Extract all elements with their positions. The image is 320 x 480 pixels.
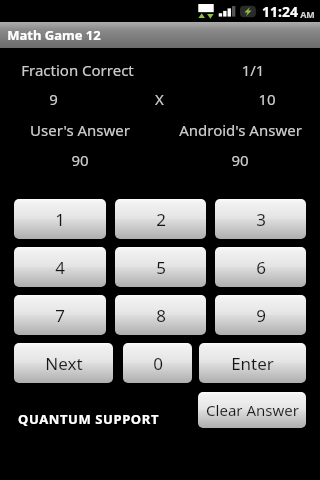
- button[interactable]: 7: [14, 295, 106, 335]
- staticText: Next: [45, 352, 83, 375]
- staticText: 0: [153, 352, 163, 375]
- button[interactable]: 2: [115, 199, 206, 239]
- staticText: Math Game 12: [7, 26, 101, 44]
- staticText: Enter: [231, 352, 274, 375]
- staticText: 11:24: [262, 2, 298, 21]
- staticText: 7: [55, 304, 65, 327]
- staticText: 3: [256, 208, 266, 231]
- staticText: 8: [156, 304, 166, 327]
- staticText: 6: [256, 256, 266, 279]
- staticText: 4: [55, 256, 65, 279]
- staticText: 10: [258, 89, 276, 109]
- staticText: X: [155, 89, 164, 109]
- other: Signal strength: [218, 3, 236, 20]
- other: 3G data connection: [197, 3, 215, 20]
- staticText: User's Answer: [30, 120, 130, 140]
- button[interactable]: 4: [14, 247, 106, 287]
- button[interactable]: 6: [215, 247, 306, 287]
- button[interactable]: 3: [215, 199, 306, 239]
- staticText: QUANTUM SUPPORT: [18, 410, 159, 428]
- staticText: 9: [49, 89, 58, 109]
- button[interactable]: 1: [14, 199, 106, 239]
- staticText: 1/1: [226, 60, 280, 80]
- staticText: 90: [71, 150, 89, 170]
- staticText: Android's Answer: [179, 120, 302, 140]
- staticText: 5: [156, 256, 166, 279]
- staticText: 90: [231, 150, 249, 170]
- button[interactable]: 9: [215, 295, 306, 335]
- staticText: 1: [55, 208, 65, 231]
- staticText: Fraction Correct: [21, 60, 134, 80]
- button[interactable]: Clear Answer: [198, 392, 306, 428]
- button[interactable]: 0: [123, 343, 192, 383]
- button[interactable]: Enter: [199, 343, 306, 383]
- staticText: AM: [300, 8, 315, 20]
- other: Battery charging: [239, 4, 258, 19]
- staticText: 9: [256, 304, 266, 327]
- staticText: 2: [156, 208, 166, 231]
- button[interactable]: 5: [115, 247, 206, 287]
- button[interactable]: Next: [14, 343, 113, 383]
- staticText: Clear Answer: [206, 400, 299, 420]
- button[interactable]: 8: [115, 295, 206, 335]
